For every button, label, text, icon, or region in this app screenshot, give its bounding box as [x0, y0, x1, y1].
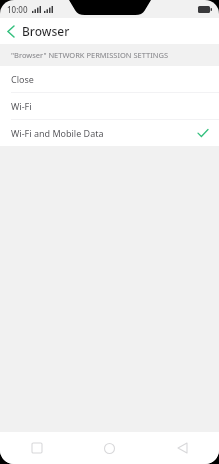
button[interactable]: Recents	[0, 432, 73, 464]
staticText: "Browser" NETWORK PERMISSION SETTINGS	[11, 50, 169, 60]
staticText: Wi-Fi	[11, 100, 32, 112]
staticText: Close	[11, 73, 34, 85]
button[interactable]: Home	[73, 432, 146, 464]
button[interactable]: Back	[0, 18, 22, 44]
staticText: 10:00	[7, 4, 28, 15]
staticText: Browser	[22, 23, 70, 39]
button[interactable]: Wi-Fi and Mobile Data	[0, 120, 219, 146]
button[interactable]: Wi-Fi	[0, 93, 219, 119]
button[interactable]: Back	[146, 432, 219, 464]
button[interactable]: Close	[0, 66, 219, 92]
staticText: Wi-Fi and Mobile Data	[11, 127, 104, 139]
